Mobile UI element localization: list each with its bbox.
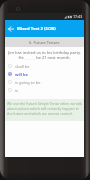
staticText: is going to be bbox=[15, 80, 41, 85]
button[interactable]: Back bbox=[5, 20, 17, 37]
staticText: We use the Future Simple Tense when we t… bbox=[7, 101, 82, 116]
staticText: shall be bbox=[15, 64, 30, 69]
staticText: 17:43 bbox=[73, 14, 83, 19]
staticText: Jim has invited us to his birthday party… bbox=[6, 50, 83, 60]
staticText: is bbox=[15, 88, 18, 93]
button[interactable]: shall be bbox=[5, 62, 84, 70]
button[interactable]: will be bbox=[5, 70, 84, 78]
button[interactable]: is bbox=[5, 86, 84, 94]
staticText: 6. Future Tenses bbox=[29, 40, 60, 45]
staticText: Mixed Test 2 (3/28) bbox=[17, 26, 56, 32]
button[interactable]: is going to be bbox=[5, 78, 84, 86]
staticText: will be bbox=[15, 72, 28, 77]
